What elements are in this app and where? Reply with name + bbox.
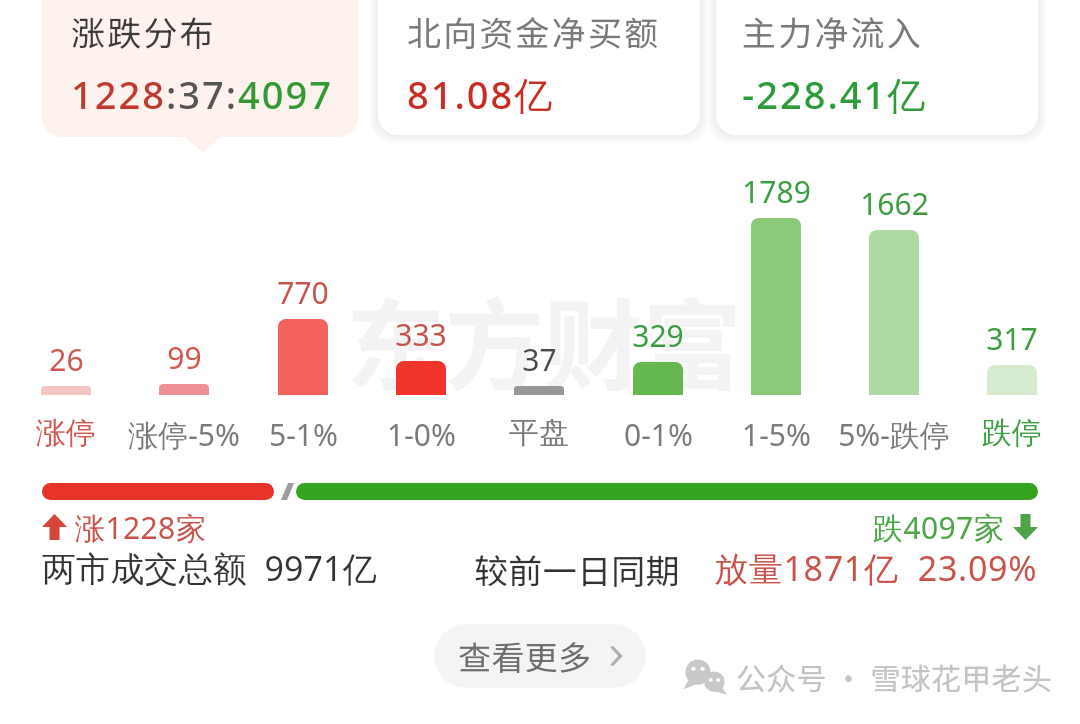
button[interactable]: 主力净流入 [716,0,1038,135]
staticText: -228.41亿 [742,68,928,120]
staticText: 1228:37:4097 [71,68,334,120]
staticText: 1-5% [742,414,811,450]
staticText: 26 [49,339,84,375]
button[interactable]: 涨跌分布 [42,0,358,137]
staticText: 较前一日同期 [474,545,680,589]
staticText: 东方财富 [346,267,742,410]
staticText: 1-0% [387,414,456,450]
staticText: 北向资金净买额 [407,7,661,56]
staticText: 跌4097家 [873,507,1005,547]
staticText: 涨1228家 [75,507,207,547]
staticText: 涨跌分布 [71,7,216,56]
staticText: 81.08亿 [407,68,555,120]
staticText: 公众号 · 雪球花甲老头 [736,655,1052,698]
staticText: 涨停-5% [128,414,240,450]
staticText: 329 [632,315,684,351]
staticText: 0-1% [624,414,693,450]
staticText: 333 [395,314,447,350]
button[interactable]: 北向资金净买额 [378,0,700,135]
staticText: 1789 [742,171,811,207]
staticText: 涨停 [36,414,96,450]
staticText: 放量1871亿 23.09% [714,545,1038,589]
staticText: 99 [167,337,202,373]
staticText: 37 [522,339,557,375]
staticText: 主力净流入 [742,7,923,56]
other: Declining [1013,514,1038,540]
staticText: 5%-跌停 [838,414,950,450]
staticText: 跌停 [982,414,1042,450]
button[interactable]: 查看更多 [434,624,646,688]
staticText: 两市成交总额 9971亿 [42,545,377,589]
staticText: 1662 [860,183,929,219]
staticText: 317 [986,318,1038,354]
other: Advancing [42,514,67,540]
staticText: 查看更多 [458,632,592,680]
staticText: 770 [277,272,329,308]
staticText: 平盘 [509,414,569,450]
staticText: 5-1% [269,414,338,450]
